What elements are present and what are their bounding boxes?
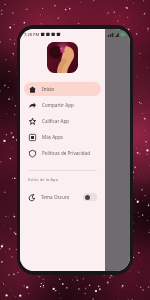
button[interactable]: Inicio (24, 82, 101, 96)
staticText: Compartir App (42, 102, 74, 108)
staticText: Políticas de Privacidad (42, 150, 90, 156)
button[interactable]: Compartir App (24, 98, 101, 112)
staticText: Calificar App (42, 118, 70, 124)
staticText: Tema Oscuro (41, 194, 70, 200)
button[interactable]: Políticas de Privacidad (24, 146, 101, 160)
button[interactable]: Calificar App (24, 114, 101, 128)
staticText: Más Apps (42, 134, 63, 140)
button[interactable]: Close drawer (105, 29, 130, 271)
button[interactable]: Tema Oscuro (20, 189, 105, 205)
staticText: Inicio (42, 86, 55, 92)
button[interactable]: App icon (47, 42, 78, 73)
staticText: Estilo de la App (28, 177, 58, 183)
button[interactable]: Más Apps (24, 130, 101, 144)
button[interactable]: Tema Oscuro switch (83, 193, 97, 201)
staticText: 7:28 PM (24, 32, 40, 37)
